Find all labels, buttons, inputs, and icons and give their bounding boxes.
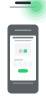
button[interactable] (18, 69, 28, 73)
